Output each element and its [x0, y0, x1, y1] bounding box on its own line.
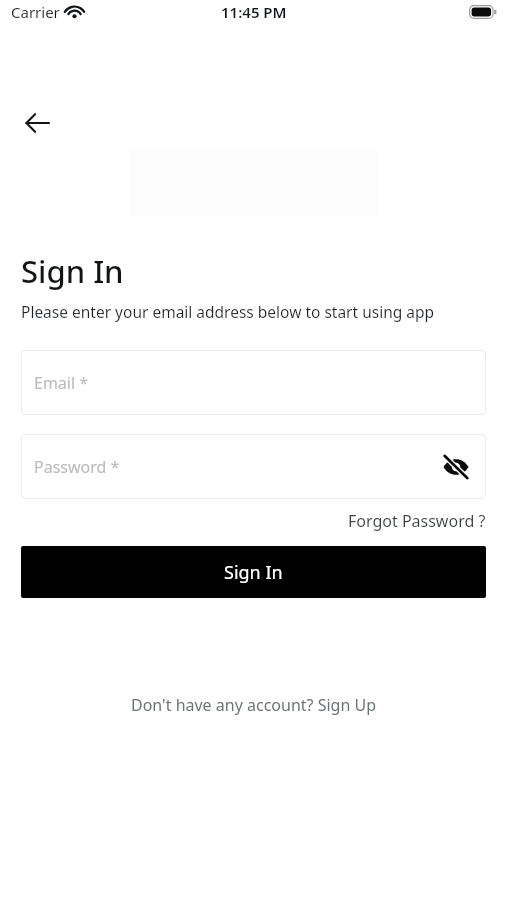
button[interactable]: Password *: [21, 434, 486, 499]
staticText: Password *: [34, 456, 120, 478]
staticText: Email *: [34, 372, 89, 394]
button[interactable]: Back: [14, 100, 60, 146]
staticText: Don't have any account? Sign Up: [131, 694, 376, 716]
staticText: 11:45 PM: [221, 2, 287, 22]
staticText: Please enter your email address below to…: [21, 301, 435, 322]
staticText: Sign In: [224, 560, 283, 585]
button[interactable]: Don't have any account? Sign Up: [125, 690, 382, 720]
staticText: Forgot Password ?: [348, 510, 486, 532]
button[interactable]: Forgot Password ?: [346, 507, 488, 535]
button[interactable]: Show password: [434, 445, 478, 489]
staticText: Carrier: [11, 2, 60, 22]
button[interactable]: Sign In: [21, 546, 486, 598]
staticText: Sign In: [21, 250, 124, 292]
button[interactable]: Email *: [21, 350, 486, 415]
